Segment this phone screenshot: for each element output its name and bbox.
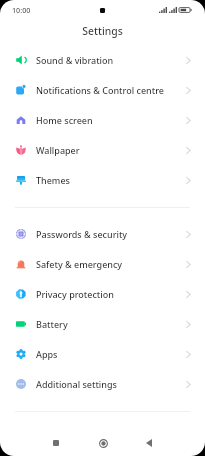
button[interactable]: Themes	[0, 165, 205, 195]
staticText: Sound & vibration	[36, 54, 114, 66]
staticText: Apps	[36, 348, 58, 360]
staticText: Settings	[82, 24, 123, 38]
button[interactable]: Apps	[0, 339, 205, 369]
staticText: Additional settings	[36, 378, 117, 390]
staticText: Passwords & security	[36, 228, 128, 240]
button[interactable]: Back	[136, 430, 162, 456]
button[interactable]: Home	[90, 430, 116, 456]
button[interactable]: Home screen	[0, 105, 205, 135]
staticText: Themes	[36, 174, 70, 186]
staticText: Privacy protection	[36, 288, 114, 300]
button[interactable]: Notifications & Control centre	[0, 75, 205, 105]
button[interactable]: Battery	[0, 309, 205, 339]
button[interactable]: Recent apps	[43, 430, 69, 456]
staticText: Notifications & Control centre	[36, 84, 164, 96]
button[interactable]: Additional settings	[0, 369, 205, 399]
staticText: Battery	[36, 318, 68, 330]
button[interactable]: Safety & emergency	[0, 249, 205, 279]
button[interactable]: Wallpaper	[0, 135, 205, 165]
staticText: Home screen	[36, 114, 93, 126]
staticText: Safety & emergency	[36, 258, 123, 270]
button[interactable]: Sound & vibration	[0, 45, 205, 75]
staticText: Wallpaper	[36, 144, 80, 156]
button[interactable]: Privacy protection	[0, 279, 205, 309]
staticText: 10:00	[12, 5, 31, 15]
button[interactable]: Passwords & security	[0, 219, 205, 249]
